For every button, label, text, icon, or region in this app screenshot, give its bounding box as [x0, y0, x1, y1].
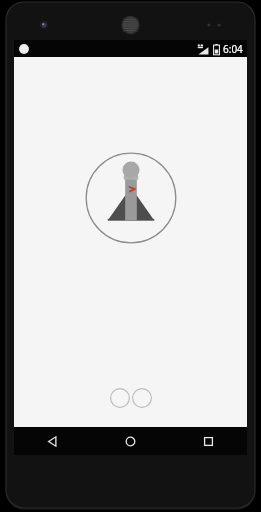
staticText: 6:04	[223, 42, 243, 56]
button[interactable]: Page 1	[109, 387, 131, 409]
button[interactable]: Recent apps	[169, 427, 247, 455]
button[interactable]: Character avatar	[85, 152, 177, 244]
button[interactable]: Back	[14, 427, 91, 455]
button[interactable]: Page 2	[131, 387, 153, 409]
button[interactable]: Home	[91, 427, 169, 455]
